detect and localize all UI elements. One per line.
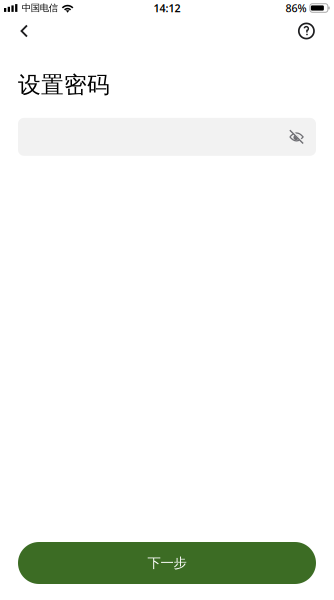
staticText: 86% xyxy=(286,1,307,15)
staticText: 中国电信 xyxy=(22,2,58,14)
button[interactable]: Back xyxy=(0,16,64,46)
staticText: 下一步 xyxy=(147,555,186,571)
button[interactable]: Help xyxy=(270,16,334,46)
staticText: 14:12 xyxy=(153,1,180,15)
button[interactable]: Show password xyxy=(289,118,316,156)
button[interactable]: 下一步 xyxy=(18,542,316,584)
staticText: 设置密码 xyxy=(18,71,110,99)
